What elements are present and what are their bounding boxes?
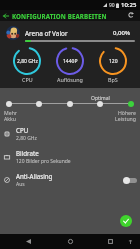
button[interactable] (128, 101, 134, 107)
staticText: CPU (22, 76, 33, 83)
staticText: 0,00% (113, 29, 131, 37)
staticText: Optimal (91, 95, 110, 102)
button[interactable]: Startseite (63, 234, 77, 249)
staticText: Aus (16, 181, 25, 188)
staticText: Arena of Valor (25, 29, 68, 38)
button[interactable] (67, 101, 73, 107)
staticText: 2,80 GHz (17, 58, 38, 65)
staticText: KONFIGURATION BEARBEITEN (12, 12, 107, 20)
button[interactable] (36, 101, 42, 107)
staticText: Höhere Leistung (96, 109, 136, 122)
button[interactable]: CPU (0, 123, 140, 145)
staticText: Mehr Akku (4, 109, 17, 122)
staticText: 90 (109, 2, 115, 9)
staticText: 120 Bilder pro Sekunde (16, 158, 71, 165)
staticText: BpS (108, 76, 118, 83)
staticText: Auflösung (57, 76, 83, 83)
button[interactable]: Anheften (123, 234, 137, 249)
button[interactable]: Anti-Aliasing umschalten (123, 176, 136, 184)
staticText: Anti-Aliasing (16, 172, 53, 180)
button[interactable]: Zurück (0, 10, 12, 22)
staticText: 1440P (63, 58, 78, 65)
staticText: 120 (109, 58, 118, 65)
button[interactable]: Bildrate (0, 146, 140, 168)
staticText: 2,80 GHz (16, 135, 37, 142)
staticText: Bildrate (16, 149, 39, 157)
button[interactable]: Zurück (21, 234, 35, 249)
button[interactable] (97, 101, 103, 107)
button[interactable]: Übersicht (103, 234, 117, 249)
staticText: 10:25 (121, 1, 137, 9)
button[interactable]: Anti-Aliasing (0, 169, 140, 191)
button[interactable] (6, 101, 12, 107)
button[interactable]: Zurücksetzen (125, 9, 137, 21)
staticText: CPU (16, 126, 29, 134)
button[interactable]: Speichern (120, 215, 132, 227)
